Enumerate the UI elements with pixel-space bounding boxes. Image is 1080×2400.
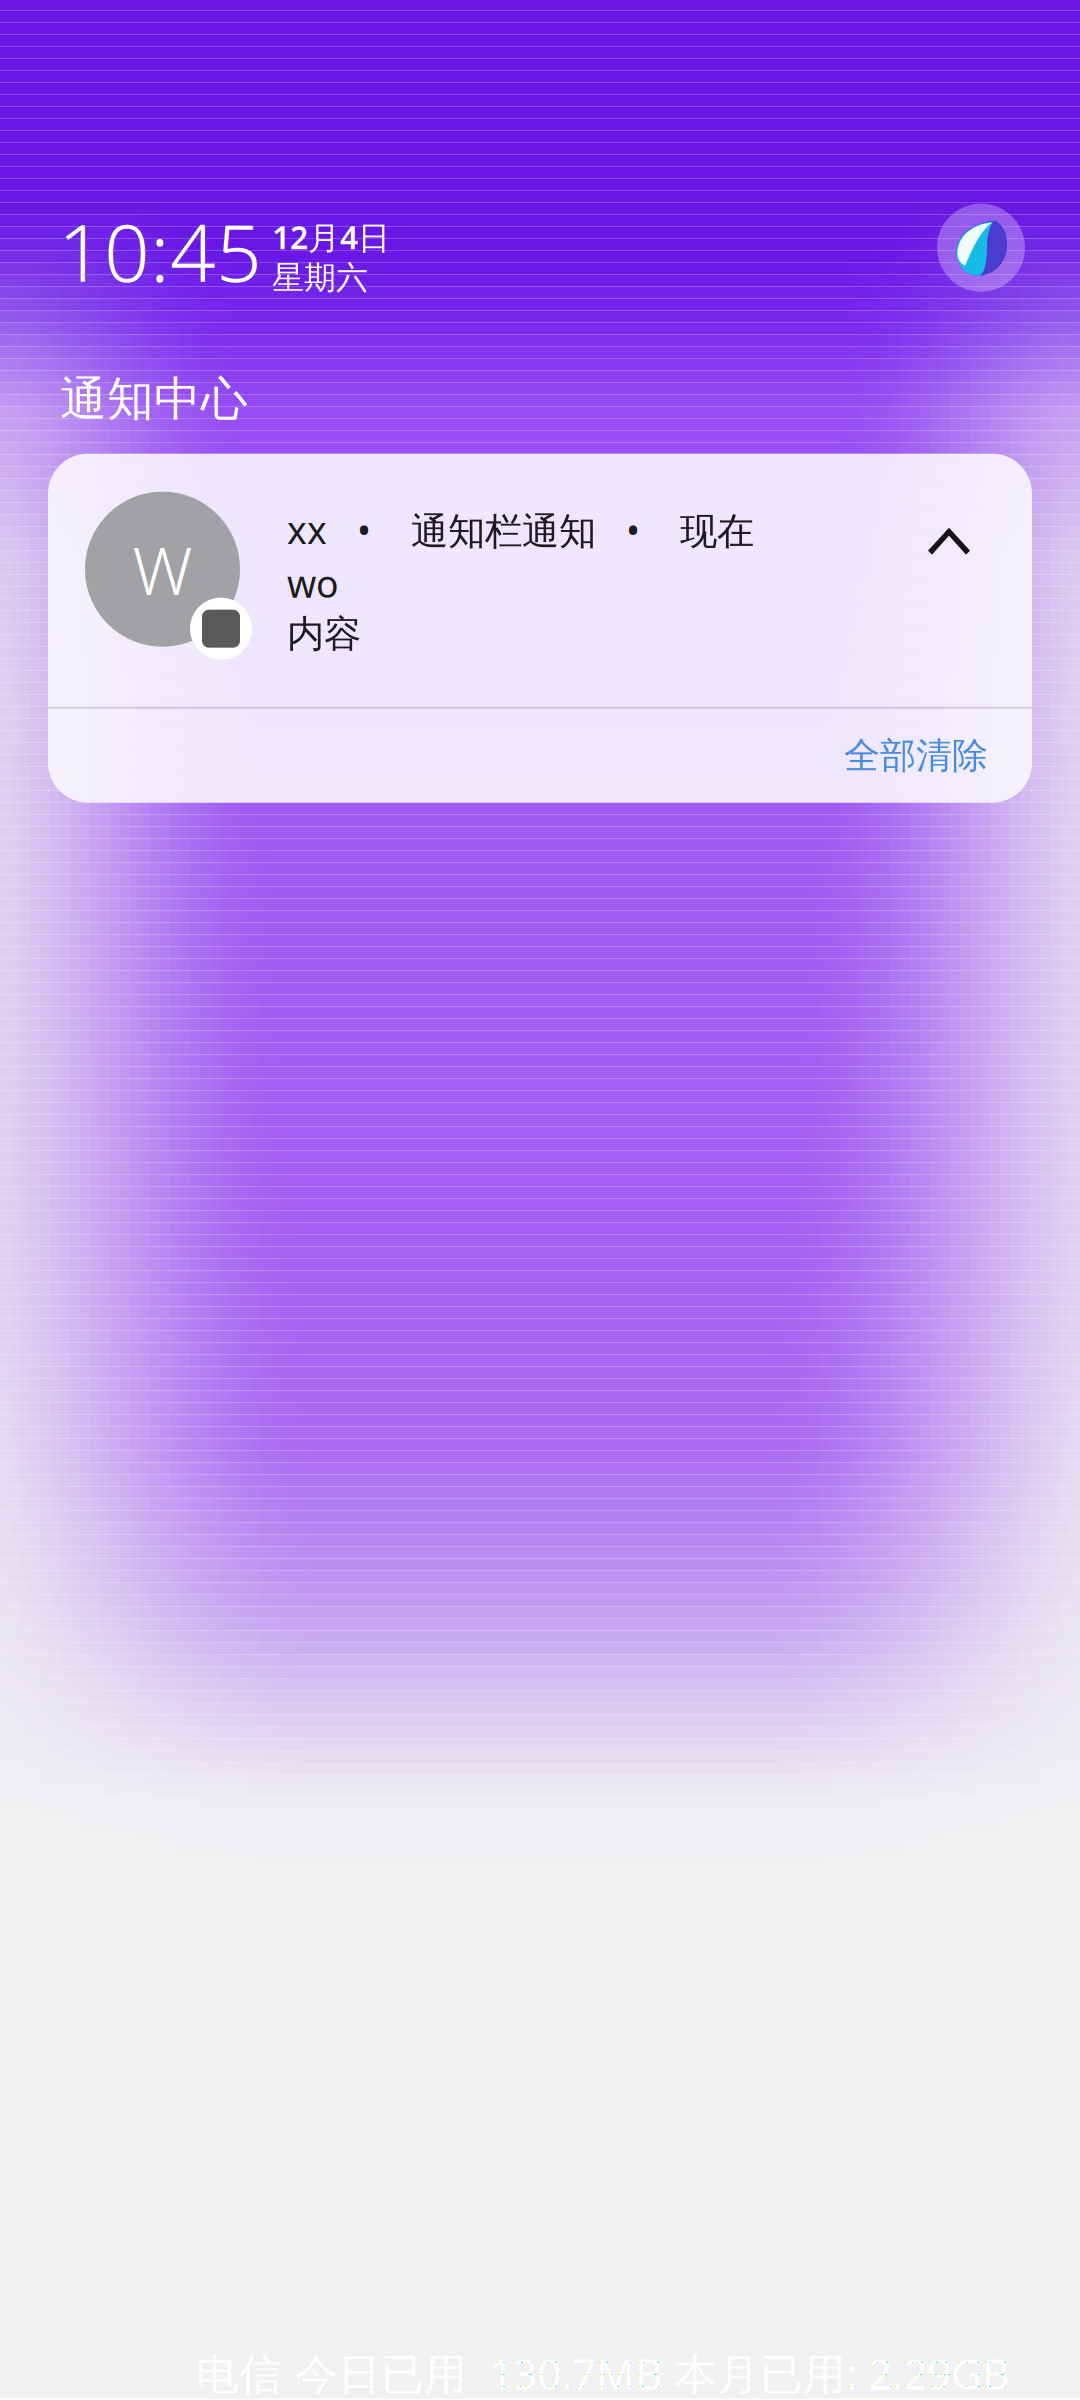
staticText: W xyxy=(132,525,192,613)
staticText: xx • 通知栏通知 • 现在 xyxy=(287,505,754,554)
button[interactable]: 语音助手 xyxy=(937,204,1025,292)
staticText: 内容 xyxy=(287,611,361,657)
staticText: 12月4日 xyxy=(272,216,390,258)
button[interactable]: W xyxy=(48,454,1032,707)
staticText: 10:45 xyxy=(58,198,262,304)
staticText: 电信 今日已用 130.7MB 本月已用: 2.29GB xyxy=(196,2345,1010,2400)
staticText: wo xyxy=(287,558,339,608)
staticText: 星期六 xyxy=(272,258,368,297)
staticText: 全部清除 xyxy=(844,734,988,778)
staticText: 通知中心 xyxy=(60,371,248,428)
button[interactable]: 全部清除 xyxy=(48,709,1032,803)
